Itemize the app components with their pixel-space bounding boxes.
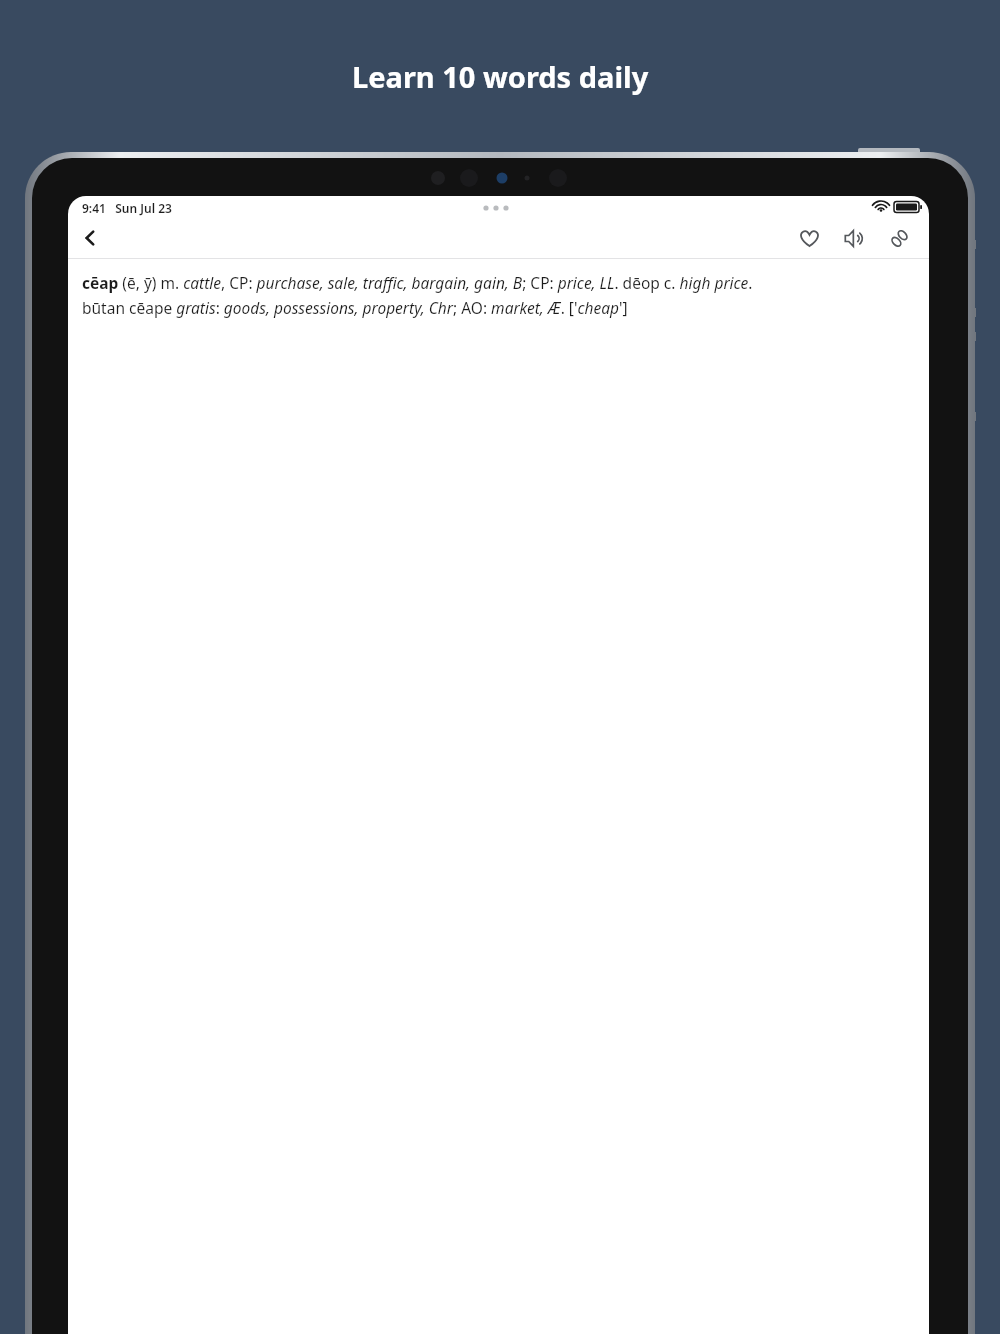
button[interactable]: Pronounce: [832, 218, 877, 259]
button[interactable]: Favorite: [787, 218, 832, 259]
staticText: 9:41 Sun Jul 23: [82, 200, 172, 216]
staticText: cēap (ē, ȳ) m. cattle, CP: purchase, sal…: [82, 272, 753, 318]
button[interactable]: Back: [70, 218, 110, 258]
staticText: Learn 10 words daily: [352, 57, 649, 96]
button[interactable]: Copy link: [877, 218, 922, 259]
